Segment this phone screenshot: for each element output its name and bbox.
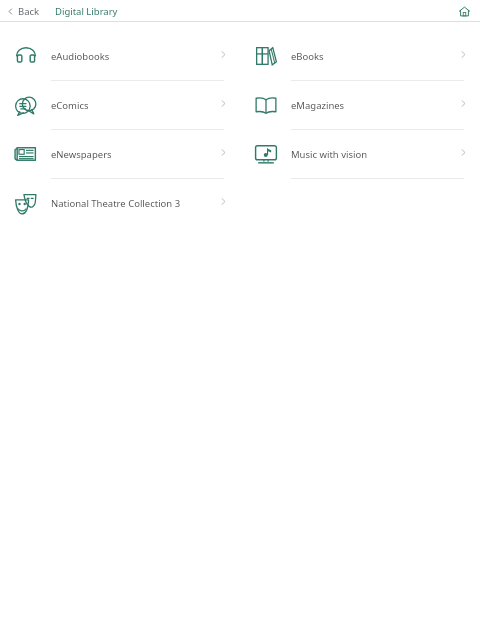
staticText: Music with vision xyxy=(291,148,458,161)
button[interactable]: eNewspapers xyxy=(0,130,232,178)
button[interactable]: eComics xyxy=(0,81,232,129)
button[interactable]: eMagazines xyxy=(240,81,472,129)
staticText: Back xyxy=(18,5,40,18)
staticText: National Theatre Collection 3 xyxy=(51,197,218,210)
staticText: eBooks xyxy=(291,50,458,63)
staticText: eComics xyxy=(51,99,218,112)
staticText: eAudiobooks xyxy=(51,50,218,63)
staticText: eNewspapers xyxy=(51,148,218,161)
staticText: eMagazines xyxy=(291,99,458,112)
button[interactable]: eAudiobooks xyxy=(0,32,232,80)
button[interactable]: eBooks xyxy=(240,32,472,80)
button[interactable]: Digital Library xyxy=(55,5,118,18)
button[interactable]: National Theatre Collection 3 xyxy=(0,179,232,227)
button[interactable]: Music with vision xyxy=(240,130,472,178)
button[interactable]: Back xyxy=(6,5,40,18)
button[interactable]: Home xyxy=(455,2,473,20)
